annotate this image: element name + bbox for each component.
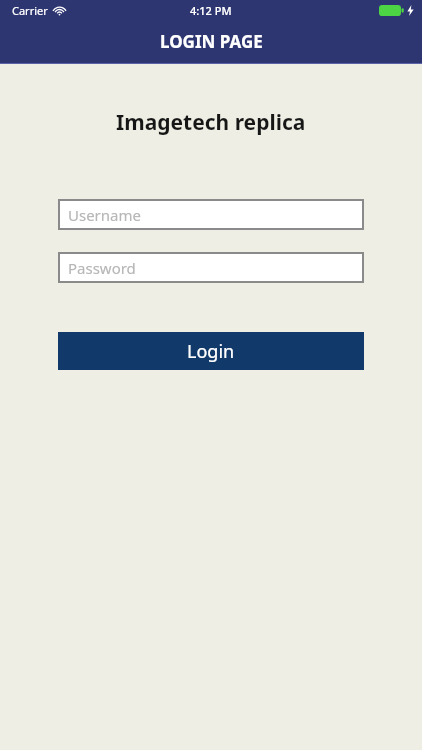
staticText: Imagetech replica [116, 108, 306, 137]
staticText: Username [68, 205, 141, 225]
staticText: LOGIN PAGE [160, 30, 263, 53]
button[interactable]: Username [58, 199, 364, 230]
staticText: Carrier [12, 3, 48, 18]
staticText: 4:12 PM [190, 3, 232, 18]
staticText: Login [187, 339, 235, 364]
staticText: Password [68, 258, 136, 278]
button[interactable]: Login [58, 332, 364, 370]
button[interactable]: Password [58, 252, 364, 283]
